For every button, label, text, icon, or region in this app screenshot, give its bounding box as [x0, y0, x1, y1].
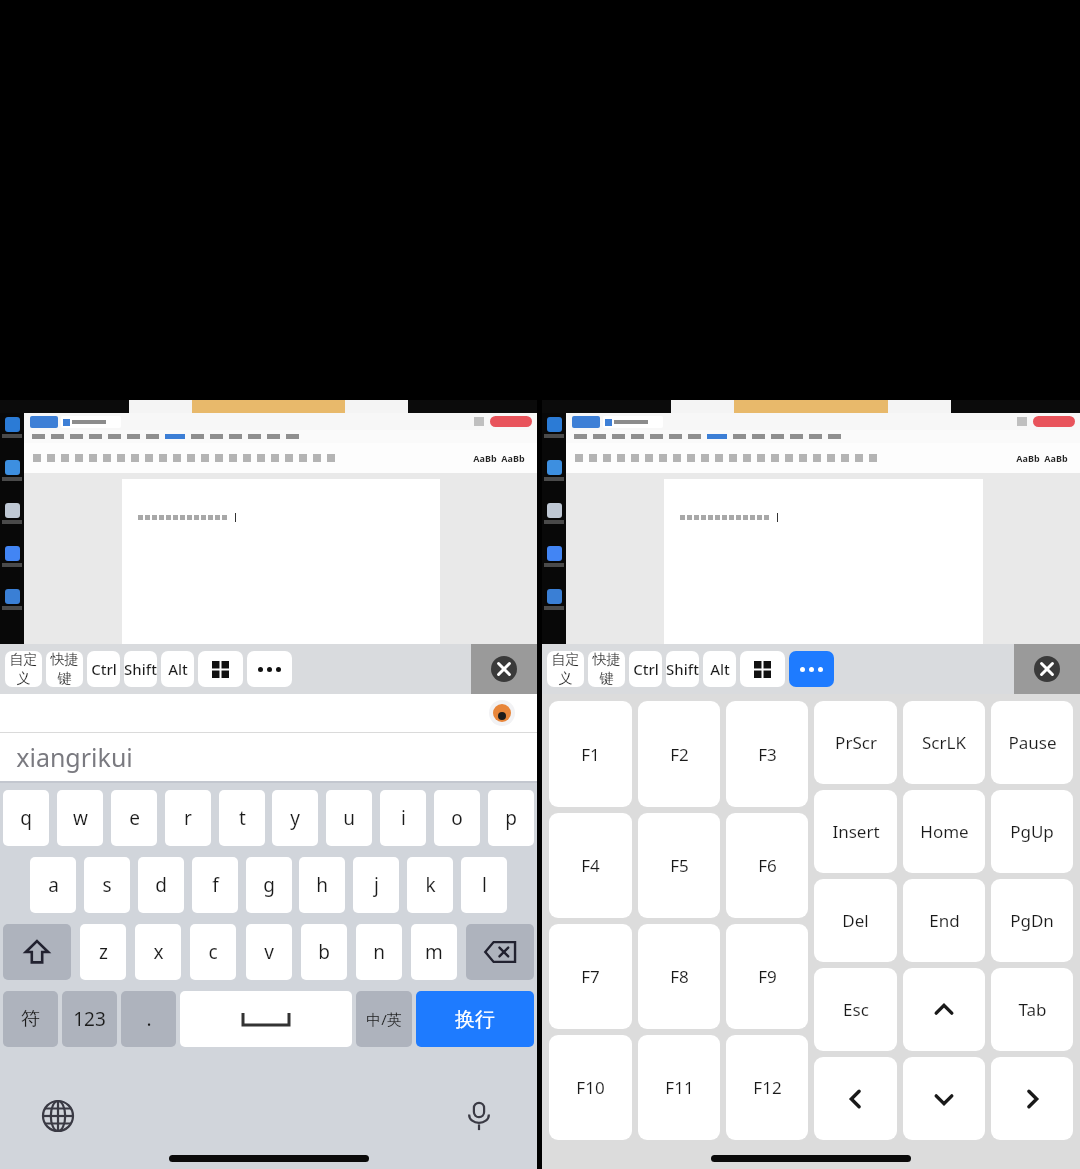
button[interactable]: 符	[3, 991, 58, 1047]
staticText: m	[425, 939, 443, 965]
button[interactable]: End	[903, 879, 985, 962]
button[interactable]: Voice input	[457, 1094, 501, 1138]
button[interactable]: s	[84, 857, 130, 913]
button[interactable]: Change language	[36, 1094, 80, 1138]
button[interactable]: F4	[549, 813, 632, 918]
button[interactable]: Esc	[814, 968, 897, 1051]
button[interactable]: F7	[549, 924, 632, 1029]
staticText: d	[155, 872, 167, 898]
button[interactable]: Ctrl	[629, 651, 662, 687]
button[interactable]: f	[192, 857, 238, 913]
button[interactable]: x	[135, 924, 181, 980]
button[interactable]: Backspace	[466, 924, 534, 980]
button[interactable]: More options	[247, 651, 292, 687]
button[interactable]: q	[3, 790, 49, 846]
button[interactable]: Shift	[3, 924, 71, 980]
button[interactable]: Close	[471, 644, 537, 694]
button[interactable]: d	[138, 857, 184, 913]
button[interactable]: F1	[549, 701, 632, 807]
button[interactable]: m	[411, 924, 457, 980]
button[interactable]: Left	[814, 1057, 897, 1140]
button[interactable]: .	[121, 991, 176, 1047]
button[interactable]: Shift	[124, 651, 157, 687]
button[interactable]: a	[30, 857, 76, 913]
button[interactable]: 快捷键	[588, 651, 625, 687]
staticText: Alt	[168, 659, 188, 679]
button[interactable]: PgUp	[991, 790, 1073, 873]
button[interactable]: Right	[991, 1057, 1073, 1140]
button[interactable]: 快捷键	[46, 651, 83, 687]
button[interactable]: Up	[903, 968, 985, 1051]
button[interactable]: e	[111, 790, 157, 846]
staticText: s	[102, 872, 112, 898]
button[interactable]: g	[246, 857, 292, 913]
button[interactable]: Del	[814, 879, 897, 962]
button[interactable]: v	[246, 924, 292, 980]
button[interactable]: F6	[726, 813, 808, 918]
button[interactable]: w	[57, 790, 103, 846]
button[interactable]: 123	[62, 991, 117, 1047]
button[interactable]: Shift	[666, 651, 699, 687]
button[interactable]: Alt	[161, 651, 194, 687]
button[interactable]: F12	[726, 1035, 808, 1140]
button[interactable]: F8	[638, 924, 720, 1029]
button[interactable]: More options	[789, 651, 834, 687]
button[interactable]: Tab	[991, 968, 1073, 1051]
button[interactable]: PrScr	[814, 701, 897, 784]
staticText: 123	[73, 1006, 106, 1032]
button[interactable]: F9	[726, 924, 808, 1029]
button[interactable]: k	[407, 857, 453, 913]
staticText: b	[318, 939, 330, 965]
button[interactable]: Ctrl	[87, 651, 120, 687]
button[interactable]: n	[356, 924, 402, 980]
button[interactable]: F10	[549, 1035, 632, 1140]
button[interactable]: i	[380, 790, 426, 846]
button[interactable]: F3	[726, 701, 808, 807]
button[interactable]: ScrLK	[903, 701, 985, 784]
button[interactable]: Alt	[703, 651, 736, 687]
button[interactable]: Home	[903, 790, 985, 873]
staticText: Ctrl	[91, 659, 117, 679]
button[interactable]: 换行	[416, 991, 534, 1047]
button[interactable]: Profile	[489, 700, 515, 726]
button[interactable]: Insert	[814, 790, 897, 873]
button[interactable]: j	[353, 857, 399, 913]
staticText: PrScr	[835, 731, 877, 754]
button[interactable]: F5	[638, 813, 720, 918]
button[interactable]: Close	[1014, 644, 1080, 694]
staticText: h	[316, 872, 328, 898]
button[interactable]: t	[219, 790, 265, 846]
button[interactable]: F11	[638, 1035, 720, 1140]
staticText: 换行	[455, 1007, 495, 1032]
button[interactable]: Space	[180, 991, 352, 1047]
staticText: Insert	[832, 820, 880, 843]
button[interactable]: r	[165, 790, 211, 846]
button[interactable]: 中/英	[356, 991, 412, 1047]
button[interactable]: c	[190, 924, 236, 980]
button[interactable]: o	[434, 790, 480, 846]
button[interactable]: F2	[638, 701, 720, 807]
staticText: k	[425, 872, 436, 898]
button[interactable]: p	[488, 790, 534, 846]
button[interactable]: z	[80, 924, 126, 980]
staticText: p	[505, 805, 517, 831]
staticText: Esc	[843, 998, 869, 1021]
button[interactable]: Pause	[991, 701, 1073, 784]
staticText: o	[451, 805, 463, 831]
staticText: q	[20, 805, 32, 831]
button[interactable]: Windows key	[740, 651, 785, 687]
button[interactable]: b	[301, 924, 347, 980]
button[interactable]: 自定义	[5, 651, 42, 687]
staticText: w	[73, 805, 88, 831]
staticText: l	[482, 872, 487, 898]
button[interactable]: u	[326, 790, 372, 846]
button[interactable]: xiangrikui	[0, 733, 537, 781]
button[interactable]: h	[299, 857, 345, 913]
button[interactable]: PgDn	[991, 879, 1073, 962]
button[interactable]: Down	[903, 1057, 985, 1140]
button[interactable]: y	[272, 790, 318, 846]
staticText: F10	[576, 1076, 605, 1099]
button[interactable]: Windows key	[198, 651, 243, 687]
button[interactable]: 自定义	[547, 651, 584, 687]
button[interactable]: l	[461, 857, 507, 913]
